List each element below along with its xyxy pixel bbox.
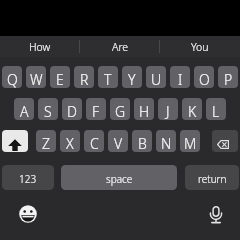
button[interactable]: K	[182, 98, 202, 120]
staticText: C	[90, 134, 99, 152]
staticText: T	[104, 70, 112, 88]
button[interactable]: L	[206, 98, 226, 120]
button[interactable]: U	[146, 66, 166, 88]
staticText: M	[184, 134, 197, 152]
staticText: Z	[42, 134, 51, 152]
staticText: H	[139, 102, 150, 120]
button[interactable]: Are	[80, 36, 160, 57]
button[interactable]	[212, 130, 238, 152]
staticText: You	[191, 40, 209, 54]
staticText: E	[56, 70, 64, 88]
button[interactable]: W	[26, 66, 46, 88]
button[interactable]: R	[74, 66, 94, 88]
button[interactable]	[2, 130, 28, 152]
button[interactable]: J	[158, 98, 178, 120]
staticText: O	[199, 70, 210, 88]
staticText: R	[80, 70, 89, 88]
button[interactable]: X	[60, 130, 80, 152]
button[interactable]: M	[180, 130, 200, 152]
button[interactable]	[204, 202, 227, 225]
staticText: How	[29, 40, 51, 54]
button[interactable]: Q	[2, 66, 22, 88]
button[interactable]: P	[218, 66, 238, 88]
button[interactable]: You	[160, 36, 240, 57]
staticText: Are	[112, 40, 129, 54]
button[interactable]: D	[62, 98, 82, 120]
staticText: B	[138, 134, 147, 152]
staticText: A	[20, 102, 29, 120]
staticText: L	[212, 102, 220, 120]
staticText: S	[44, 102, 52, 120]
button[interactable]: How	[0, 36, 80, 57]
button[interactable]: C	[84, 130, 104, 152]
staticText: Y	[128, 70, 136, 88]
staticText: X	[66, 134, 74, 152]
button[interactable]: F	[86, 98, 106, 120]
staticText: space	[106, 172, 133, 186]
staticText: N	[161, 134, 172, 152]
staticText: V	[114, 134, 123, 152]
button[interactable]: space	[61, 165, 177, 190]
staticText: K	[188, 102, 197, 120]
button[interactable]: B	[132, 130, 152, 152]
staticText: D	[67, 102, 77, 120]
staticText: 123	[19, 172, 37, 186]
button[interactable]: G	[110, 98, 130, 120]
button[interactable]: T	[98, 66, 118, 88]
button[interactable]: Y	[122, 66, 142, 88]
staticText: F	[92, 102, 100, 120]
staticText: I	[178, 70, 183, 88]
staticText: G	[115, 102, 126, 120]
staticText: P	[224, 70, 233, 88]
button[interactable]: E	[50, 66, 70, 88]
staticText: U	[151, 70, 162, 88]
button[interactable]: O	[194, 66, 214, 88]
button[interactable]: return	[185, 165, 239, 190]
button[interactable]: H	[134, 98, 154, 120]
staticText: return	[198, 172, 227, 186]
button[interactable]: I	[170, 66, 190, 88]
button[interactable]: V	[108, 130, 128, 152]
button[interactable]: S	[38, 98, 58, 120]
button[interactable]: Z	[36, 130, 56, 152]
button[interactable]: 123	[2, 165, 54, 190]
staticText: W	[30, 70, 43, 88]
button[interactable]: N	[156, 130, 176, 152]
staticText: Q	[7, 70, 18, 88]
staticText: J	[166, 102, 170, 120]
button[interactable]: A	[14, 98, 34, 120]
button[interactable]	[17, 203, 39, 225]
